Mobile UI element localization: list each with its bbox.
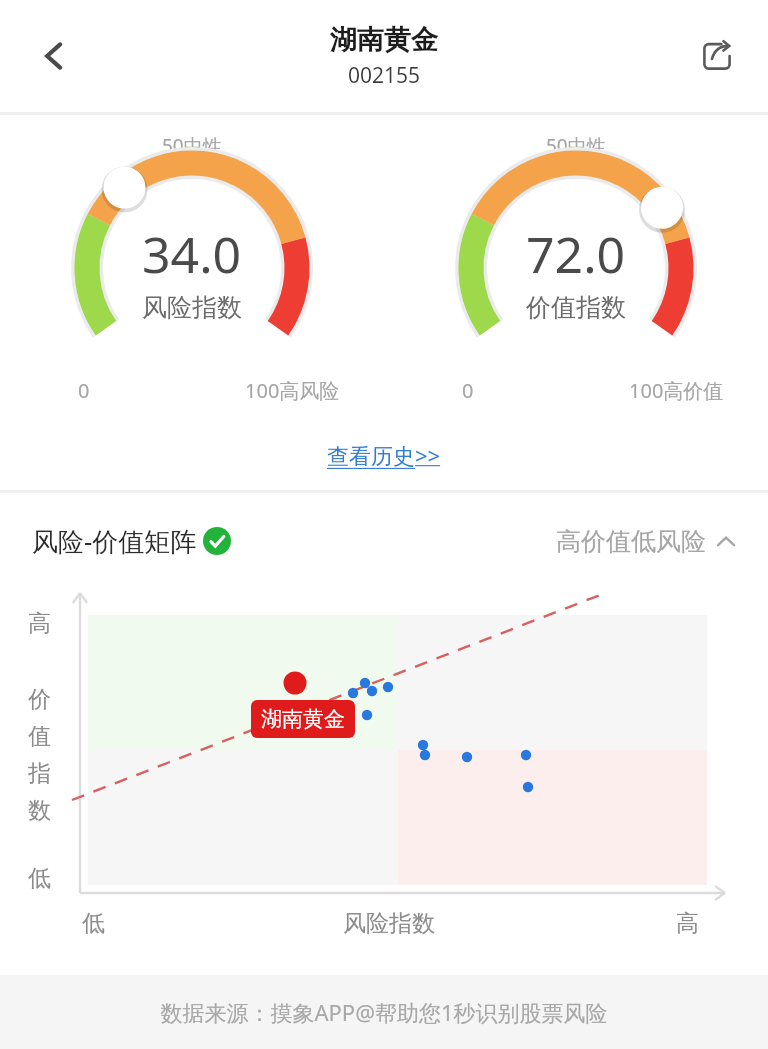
staticText: 50中性 xyxy=(546,133,606,159)
staticText: 72.0 xyxy=(526,220,626,288)
staticText: 风险指数 xyxy=(343,909,435,938)
staticText: 低 xyxy=(82,909,105,938)
staticText: 价值指数 xyxy=(526,292,626,323)
staticText: 002155 xyxy=(348,61,421,90)
staticText: 价 xyxy=(28,685,51,714)
staticText: 高 xyxy=(676,909,699,938)
staticText: 50中性 xyxy=(162,133,222,159)
staticText: 100高价值 xyxy=(629,377,724,404)
staticText: 值 xyxy=(28,722,51,751)
staticText: 湖南黄金 xyxy=(261,706,345,732)
staticText: 0 xyxy=(462,377,474,404)
staticText: 高价值低风险 xyxy=(556,526,706,557)
staticText: 风险-价值矩阵 xyxy=(32,523,197,559)
staticText: 查看历史>> xyxy=(327,440,441,470)
staticText: 湖南黄金 xyxy=(330,23,438,57)
button[interactable]: 高价值低风险 xyxy=(556,526,736,557)
staticText: 34.0 xyxy=(142,220,242,288)
staticText: 指 xyxy=(28,759,51,788)
button[interactable]: 风险-价值矩阵 xyxy=(32,523,231,559)
staticText: 数据来源：摸象APP@帮助您1秒识别股票风险 xyxy=(160,997,608,1027)
staticText: 100高风险 xyxy=(245,377,340,404)
staticText: 0 xyxy=(78,377,90,404)
staticText: 数 xyxy=(28,796,51,825)
button[interactable]: Back xyxy=(26,28,82,84)
staticText: 低 xyxy=(28,864,51,893)
button[interactable]: Share xyxy=(690,29,744,83)
staticText: 高 xyxy=(28,609,51,638)
staticText: 风险指数 xyxy=(142,292,242,323)
button[interactable]: 查看历史>> xyxy=(313,434,455,476)
